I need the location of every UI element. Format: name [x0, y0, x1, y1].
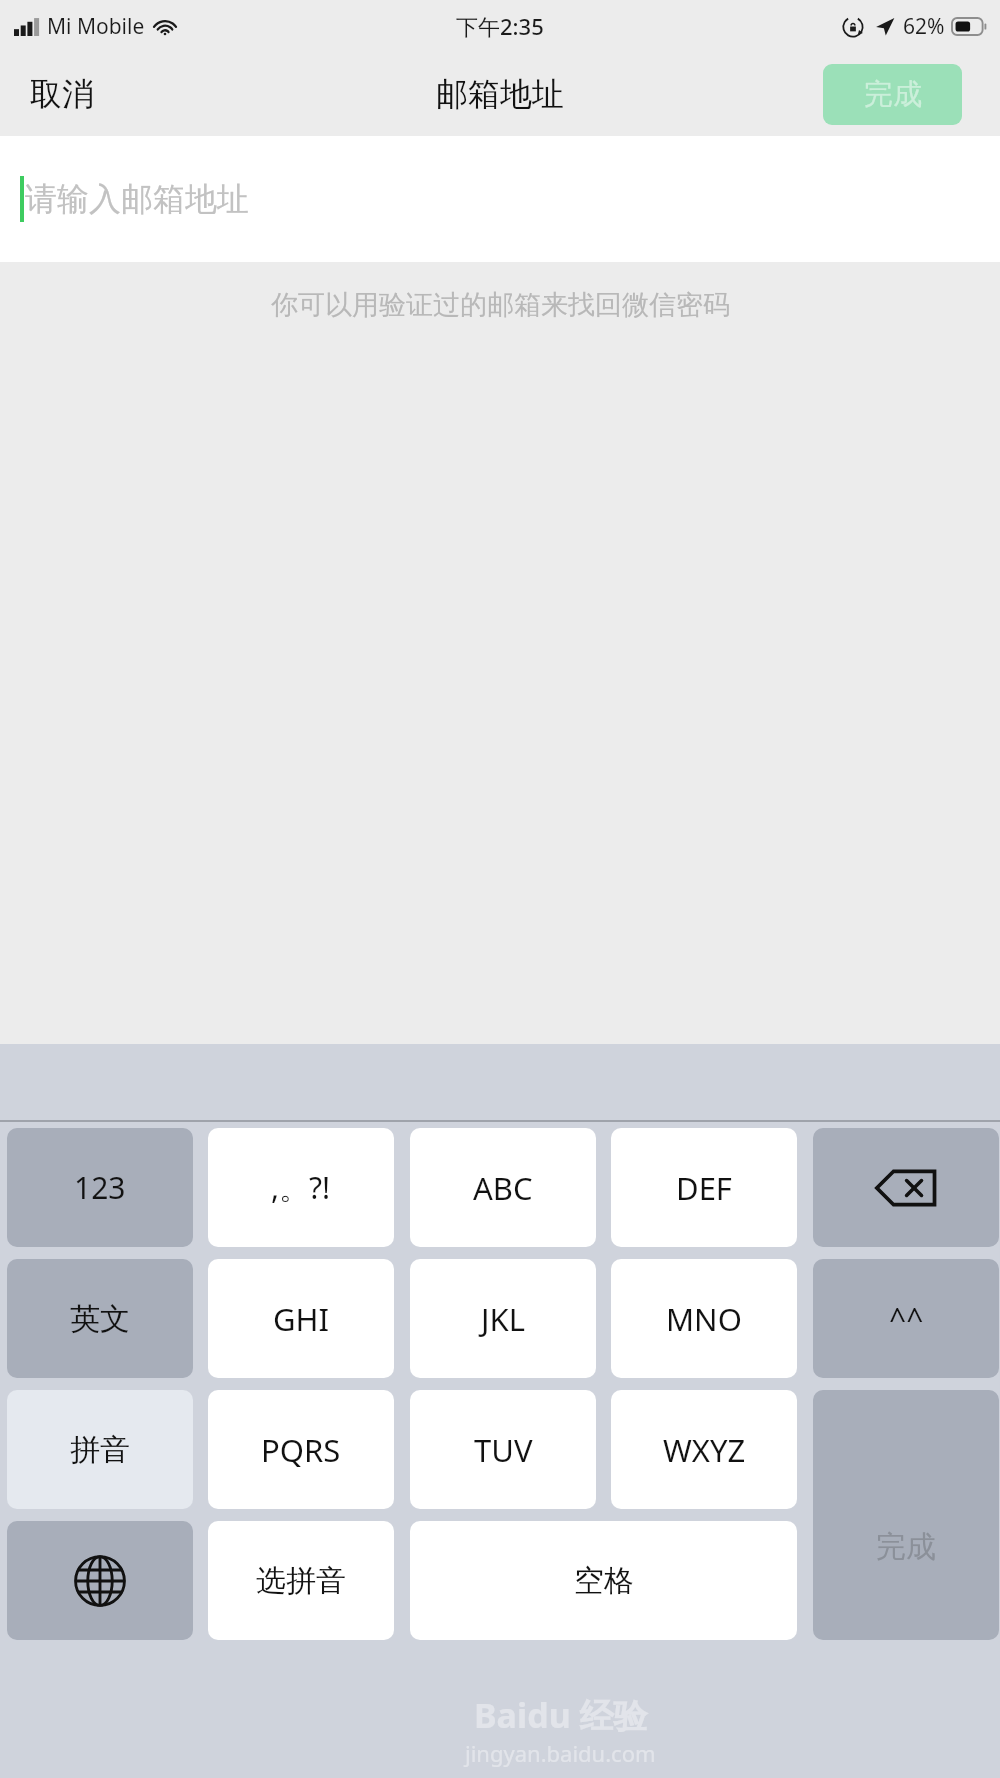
- staticText: Baidu 经验: [474, 1692, 648, 1738]
- staticText: DEF: [676, 1167, 732, 1209]
- staticText: 空格: [574, 1562, 634, 1600]
- button[interactable]: 123: [7, 1128, 193, 1247]
- staticText: MNO: [666, 1298, 742, 1340]
- staticText: PQRS: [261, 1429, 341, 1471]
- staticText: 62%: [903, 12, 945, 41]
- staticText: 123: [74, 1167, 126, 1208]
- staticText: jingyan.baidu.com: [465, 1738, 656, 1768]
- button[interactable]: TUV: [410, 1390, 596, 1509]
- button[interactable]: 拼音: [7, 1390, 193, 1509]
- staticText: ,。?!: [271, 1167, 331, 1208]
- staticText: 英文: [70, 1300, 130, 1338]
- staticText: 邮箱地址: [436, 74, 564, 114]
- staticText: 拼音: [70, 1431, 130, 1469]
- staticText: WXYZ: [663, 1429, 746, 1471]
- button[interactable]: DEF: [611, 1128, 797, 1247]
- button[interactable]: GHI: [208, 1259, 394, 1378]
- button[interactable]: ^^: [813, 1259, 999, 1378]
- staticText: 选拼音: [256, 1562, 346, 1600]
- button[interactable]: Switch keyboard: [7, 1521, 193, 1640]
- staticText: JKL: [481, 1298, 525, 1340]
- button[interactable]: 英文: [7, 1259, 193, 1378]
- button[interactable]: PQRS: [208, 1390, 394, 1509]
- staticText: 取消: [30, 74, 94, 114]
- button[interactable]: 取消: [16, 66, 108, 122]
- button[interactable]: 完成: [823, 64, 962, 125]
- staticText: TUV: [474, 1429, 533, 1471]
- button[interactable]: ,。?!: [208, 1128, 394, 1247]
- button[interactable]: 请输入邮箱地址: [0, 136, 1000, 262]
- staticText: ABC: [473, 1167, 533, 1209]
- button[interactable]: JKL: [410, 1259, 596, 1378]
- staticText: 你可以用验证过的邮箱来找回微信密码: [271, 288, 730, 322]
- staticText: 请输入邮箱地址: [25, 179, 249, 219]
- button[interactable]: 选拼音: [208, 1521, 394, 1640]
- button[interactable]: 完成: [813, 1390, 999, 1640]
- button[interactable]: Backspace: [813, 1128, 999, 1247]
- button[interactable]: MNO: [611, 1259, 797, 1378]
- staticText: 完成: [864, 76, 922, 113]
- staticText: 完成: [876, 1528, 936, 1566]
- button[interactable]: ABC: [410, 1128, 596, 1247]
- button[interactable]: WXYZ: [611, 1390, 797, 1509]
- staticText: 下午2:35: [456, 11, 544, 41]
- button[interactable]: 空格: [410, 1521, 797, 1640]
- staticText: GHI: [273, 1298, 330, 1340]
- staticText: ^^: [889, 1298, 924, 1339]
- staticText: Mi Mobile: [47, 12, 145, 41]
